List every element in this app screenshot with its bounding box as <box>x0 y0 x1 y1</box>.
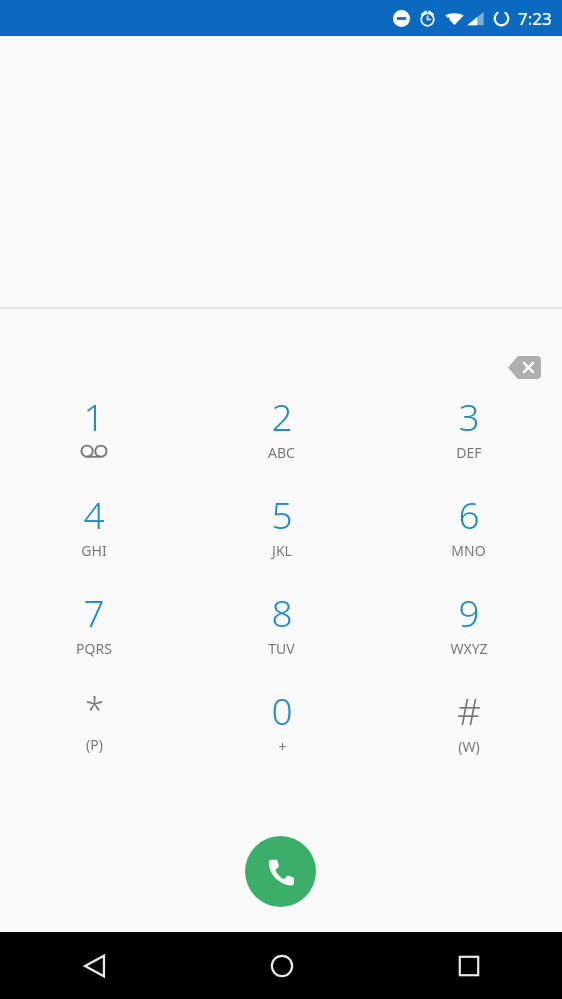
staticText: PQRS <box>76 639 112 658</box>
staticText: 6 <box>458 489 480 539</box>
button[interactable]: 8 <box>188 577 375 675</box>
button[interactable]: 5 <box>188 479 375 577</box>
staticText: # <box>457 685 481 735</box>
staticText: 9 <box>458 587 480 637</box>
staticText: WXYZ <box>450 639 488 658</box>
staticText: 2 <box>271 391 293 441</box>
button[interactable]: Home <box>188 932 375 999</box>
button[interactable]: 0 <box>188 675 375 773</box>
staticText: * <box>85 687 104 733</box>
button[interactable]: Delete <box>496 345 552 389</box>
button[interactable]: # <box>375 675 562 773</box>
staticText: ABC <box>268 443 295 462</box>
button[interactable]: 6 <box>375 479 562 577</box>
button[interactable]: Recent apps <box>375 932 562 999</box>
staticText: 3 <box>458 391 480 441</box>
staticText: TUV <box>268 639 295 658</box>
button[interactable]: 9 <box>375 577 562 675</box>
staticText: 7:23 <box>518 7 552 30</box>
button[interactable]: 2 <box>188 381 375 479</box>
staticText: DEF <box>456 443 482 462</box>
staticText: 7 <box>83 587 105 637</box>
staticText: 8 <box>271 587 293 637</box>
staticText: (W) <box>458 737 480 756</box>
button[interactable]: 1 <box>0 381 188 479</box>
staticText: JKL <box>272 541 292 560</box>
button[interactable]: 4 <box>0 479 188 577</box>
staticText: 4 <box>83 489 105 539</box>
button[interactable]: Call <box>245 836 316 907</box>
button[interactable]: * <box>0 675 188 773</box>
button[interactable]: 3 <box>375 381 562 479</box>
staticText: 0 <box>271 685 293 735</box>
staticText: + <box>278 737 287 756</box>
staticText: GHI <box>81 541 107 560</box>
staticText: 5 <box>271 489 293 539</box>
staticText: (P) <box>86 735 103 754</box>
button[interactable]: Back <box>0 932 188 999</box>
staticText: 1 <box>83 391 105 441</box>
button[interactable]: 7 <box>0 577 188 675</box>
staticText: MNO <box>451 541 486 560</box>
